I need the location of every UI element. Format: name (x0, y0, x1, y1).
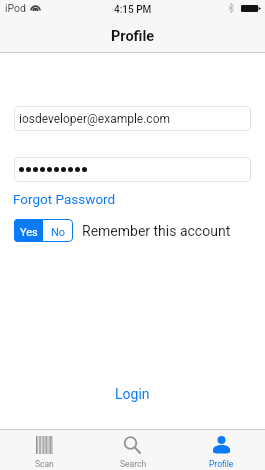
staticText: Scan (35, 459, 54, 469)
staticText: iosdeveloper@example.com (19, 112, 171, 126)
staticText: Login (115, 386, 150, 402)
staticText: 4:15 PM (114, 4, 152, 16)
button[interactable]: Login (105, 383, 160, 405)
staticText: Remember this account (82, 223, 231, 239)
button[interactable]: Forgot Password (11, 189, 118, 209)
button[interactable]: Search (89, 430, 177, 470)
button[interactable]: Profile (177, 430, 265, 470)
button[interactable]: Yes (14, 219, 43, 242)
button[interactable]: Scan (0, 430, 89, 470)
staticText: Forgot Password (13, 191, 116, 207)
button[interactable]: iosdeveloper@example.com (14, 106, 251, 131)
staticText: Profile (111, 28, 155, 42)
button[interactable]: No (43, 219, 73, 242)
button[interactable] (14, 157, 251, 182)
staticText: iPod (5, 2, 27, 14)
staticText: Search (120, 459, 147, 469)
staticText: No (51, 226, 66, 239)
staticText: Profile (209, 459, 234, 469)
staticText: Yes (20, 226, 38, 239)
